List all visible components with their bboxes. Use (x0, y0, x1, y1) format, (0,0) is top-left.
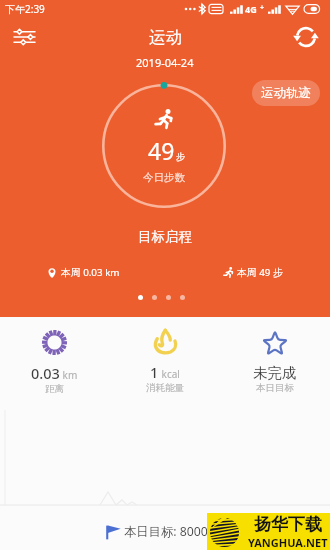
staticText: 今日步数 (143, 171, 185, 184)
button[interactable]: 运动轨迹 (252, 80, 320, 106)
staticText: 扬华下载 (254, 514, 322, 535)
staticText: 本周 0.03 km (61, 266, 120, 279)
staticText: 消耗能量 (146, 382, 184, 394)
staticText: km (60, 368, 78, 382)
staticText: 本日目标: 8000 (124, 523, 208, 540)
button[interactable]: 1 (138, 327, 192, 396)
staticText: 2019-04-24 (136, 55, 194, 70)
button[interactable]: 0.03 (23, 328, 86, 397)
button[interactable]: 目标启程 (130, 224, 200, 249)
staticText: 运动 (149, 27, 182, 48)
button[interactable]: 本周 0.03 km (47, 266, 120, 279)
staticText: 1 (150, 362, 159, 382)
staticText: 49 (148, 135, 175, 166)
staticText: 目标启程 (138, 228, 192, 245)
button[interactable]: Sync (291, 22, 321, 52)
staticText: 0.03 (31, 363, 60, 383)
staticText: 未完成 (253, 364, 297, 382)
staticText: 运动轨迹 (261, 85, 311, 101)
staticText: 下午2:39 (5, 2, 45, 16)
button[interactable]: 本日目标: 8000 (105, 523, 208, 540)
staticText: YANGHUA.NET (248, 535, 328, 550)
staticText: + (260, 3, 265, 13)
button[interactable]: 未完成 (245, 328, 305, 396)
staticText: 步 (176, 151, 186, 163)
button[interactable]: 本周 49 步 (223, 266, 283, 279)
staticText: 本日目标 (256, 382, 294, 394)
staticText: 4G (245, 3, 257, 15)
staticText: 距离 (45, 383, 64, 395)
staticText: kcal (159, 367, 180, 381)
button[interactable]: Settings (9, 22, 39, 52)
button[interactable]: 49 (102, 84, 226, 208)
staticText: 本周 49 步 (237, 266, 283, 279)
